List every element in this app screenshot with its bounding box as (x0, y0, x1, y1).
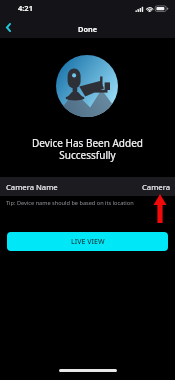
button[interactable]: Camera Name (0, 177, 175, 196)
staticText: Done (78, 24, 98, 34)
staticText: Device Has Been Added Successfully (0, 136, 175, 162)
button[interactable]: Back (0, 17, 16, 38)
staticText: Tip: Device name should be based on its … (6, 199, 134, 207)
button[interactable]: LIVE VIEW (7, 232, 168, 251)
staticText: 4:21 (18, 3, 33, 13)
staticText: Camera (142, 182, 171, 192)
staticText: LIVE VIEW (71, 237, 105, 247)
staticText: Camera Name (6, 182, 58, 192)
